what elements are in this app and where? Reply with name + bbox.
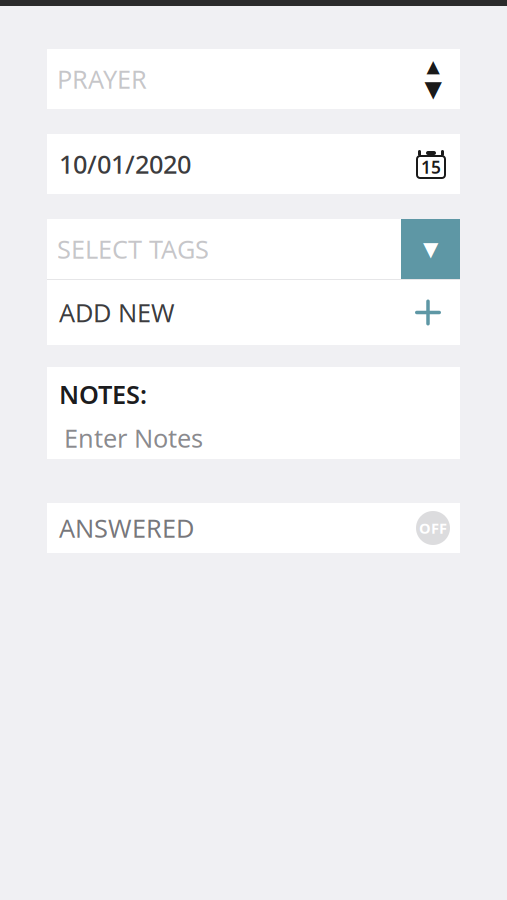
staticText: ▲ [426, 56, 439, 76]
staticText: 15 [421, 155, 441, 178]
button[interactable]: 10/01/2020 [47, 134, 460, 194]
staticText: 10/01/2020 [59, 147, 191, 181]
staticText: ▼ [423, 238, 438, 260]
staticText: Enter Notes [64, 421, 203, 455]
button[interactable]: PRAYER [47, 49, 460, 109]
staticText: PRAYER [57, 62, 147, 96]
button[interactable]: ANSWERED [47, 503, 460, 553]
button[interactable]: Done [401, 0, 499, 9]
staticText: ▼ [424, 76, 441, 102]
button[interactable]: ADD NEW [47, 280, 460, 345]
button[interactable]: Cancel [8, 0, 123, 9]
button[interactable]: NOTES: [47, 367, 460, 459]
staticText: OFF [419, 518, 447, 538]
staticText: ANSWERED [59, 511, 194, 545]
button[interactable]: Show tag options [401, 219, 460, 279]
staticText: NOTES: [59, 377, 147, 411]
staticText: ADD NEW [59, 296, 175, 329]
staticText: SELECT TAGS [57, 232, 209, 266]
